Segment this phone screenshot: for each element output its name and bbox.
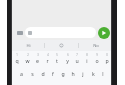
button[interactable]: 7 [72, 51, 82, 66]
staticText: 5 [56, 53, 58, 57]
staticText: d [41, 70, 45, 77]
button[interactable]: a [16, 66, 27, 80]
staticText: p [105, 57, 109, 64]
button[interactable]: 1 [12, 51, 22, 66]
staticText: 2 [27, 53, 29, 57]
button[interactable]: 0 [102, 51, 112, 66]
staticText: h [71, 70, 75, 77]
staticText: o [95, 57, 99, 64]
staticText: No [93, 43, 99, 49]
button[interactable]: 3 [32, 51, 42, 66]
staticText: 8 [86, 53, 88, 57]
button[interactable]: 8 [82, 51, 92, 66]
button[interactable]: l [98, 66, 108, 80]
button[interactable]: d [38, 66, 48, 80]
button[interactable]: 5 [52, 51, 62, 66]
staticText: l [102, 70, 104, 77]
button[interactable]: 😊 [45, 40, 78, 51]
button[interactable]: g [58, 66, 68, 80]
button[interactable]: j [78, 66, 88, 80]
staticText: k [92, 70, 95, 77]
button[interactable]: 9 [92, 51, 102, 66]
button[interactable]: h [68, 66, 78, 80]
button[interactable]: 2 [22, 51, 32, 66]
staticText: 7 [76, 53, 78, 57]
button[interactable] [25, 27, 96, 38]
button[interactable]: 4 [42, 51, 52, 66]
staticText: s [31, 70, 34, 77]
staticText: 😊 [59, 43, 64, 48]
staticText: 6 [67, 53, 69, 57]
button[interactable]: 6 [62, 51, 72, 66]
staticText: 0 [106, 53, 108, 57]
button[interactable]: Hi [12, 40, 44, 51]
staticText: 4 [47, 53, 49, 57]
button[interactable]: Attach media [14, 27, 25, 38]
button[interactable]: k [88, 66, 98, 80]
button[interactable]: No [79, 40, 112, 51]
staticText: y [66, 57, 69, 64]
staticText: r [46, 57, 49, 64]
staticText: 9 [96, 53, 98, 57]
staticText: 3 [37, 53, 39, 57]
staticText: q [15, 57, 19, 64]
staticText: g [61, 70, 65, 77]
staticText: Hi [26, 43, 31, 49]
staticText: i [86, 57, 88, 64]
staticText: f [52, 70, 54, 77]
staticText: a [20, 70, 23, 77]
staticText: 1 [16, 53, 18, 57]
staticText: u [75, 57, 79, 64]
button[interactable]: f [48, 66, 58, 80]
staticText: j [82, 70, 84, 77]
button[interactable]: s [27, 66, 38, 80]
staticText: e [36, 57, 39, 64]
staticText: t [56, 57, 58, 64]
staticText: w [25, 57, 30, 64]
button[interactable]: Send [98, 27, 110, 39]
